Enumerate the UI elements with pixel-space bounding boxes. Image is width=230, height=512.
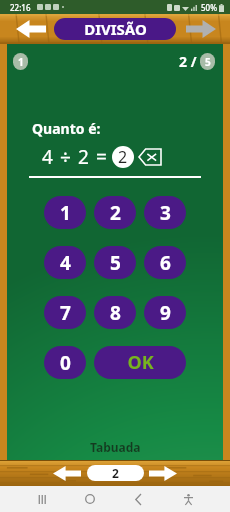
button[interactable]: Next operation (186, 20, 216, 38)
button[interactable]: Backspace (139, 149, 161, 165)
staticText: 8 (110, 300, 121, 326)
button[interactable]: Previous table (53, 466, 81, 481)
staticText: 2 (110, 200, 121, 226)
button[interactable]: 9 (144, 296, 186, 329)
staticText: 0 (60, 350, 71, 376)
staticText: = (96, 144, 107, 170)
button[interactable]: 8 (94, 296, 136, 329)
staticText: 4 (60, 250, 71, 276)
staticText: 9 (160, 300, 171, 326)
staticText: 2 (118, 146, 128, 168)
staticText: 2 (78, 144, 89, 170)
staticText: 7 (60, 300, 71, 326)
staticText: 4 (42, 144, 53, 170)
button[interactable]: Back (131, 491, 147, 507)
staticText: 50% (201, 2, 217, 13)
button[interactable]: 7 (44, 296, 86, 329)
staticText: 5 (110, 250, 121, 276)
staticText: 1 (60, 200, 71, 226)
button[interactable]: 5 (94, 246, 136, 279)
staticText: DIVISÃO (84, 19, 147, 39)
button[interactable]: 3 (144, 196, 186, 229)
staticText: Quanto é: (32, 119, 101, 138)
staticText: OK (127, 350, 154, 375)
staticText: ÷ (60, 144, 71, 170)
button[interactable]: Home (82, 491, 98, 507)
staticText: 2 / (179, 52, 197, 71)
button[interactable]: 1 (44, 196, 86, 229)
staticText: 5 (205, 55, 211, 69)
button[interactable]: Recent apps (34, 491, 50, 507)
button[interactable]: DIVISÃO (54, 18, 176, 40)
button[interactable]: Accessibility (180, 491, 196, 507)
staticText: 1 (18, 55, 24, 69)
staticText: 2 (112, 465, 119, 481)
button[interactable]: 2 (87, 465, 144, 481)
button[interactable]: Next table (149, 466, 177, 481)
button[interactable]: OK (94, 346, 186, 379)
staticText: 6 (160, 250, 171, 276)
button[interactable]: 2 (94, 196, 136, 229)
button[interactable]: 4 (44, 246, 86, 279)
staticText: 22:16 (10, 2, 31, 13)
button[interactable]: 0 (44, 346, 86, 379)
staticText: Tabuada (90, 439, 141, 455)
button[interactable]: 6 (144, 246, 186, 279)
staticText: 3 (160, 200, 171, 226)
button[interactable]: Previous operation (16, 20, 46, 38)
